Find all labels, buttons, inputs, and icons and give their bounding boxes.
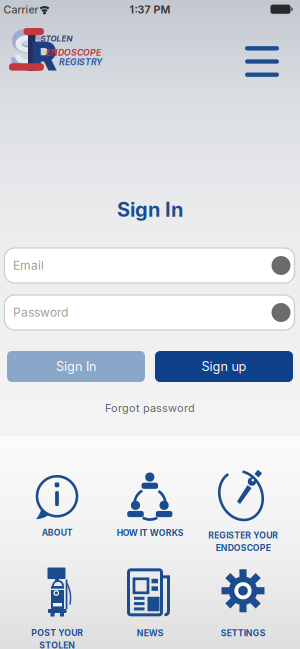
staticText: REGISTRY [59, 57, 102, 67]
staticText: S [13, 26, 39, 74]
button[interactable]: NEWS [104, 568, 196, 638]
staticText: Sign up [201, 359, 246, 374]
button[interactable]: Password [4, 295, 294, 330]
button[interactable]: Sign In [7, 351, 145, 382]
staticText: Forgot password [105, 401, 195, 415]
staticText: SETTINGS [220, 628, 265, 638]
staticText: Carrier [3, 3, 38, 16]
staticText: Password [13, 305, 68, 320]
button[interactable]: POST YOUR STOLEN [11, 556, 103, 649]
staticText: 1:37 PM [129, 3, 170, 16]
staticText: ENDOSCOPE [46, 47, 101, 58]
button[interactable]: Email [4, 248, 294, 283]
staticText: R [31, 33, 57, 80]
staticText: Sign In [56, 359, 96, 374]
staticText: S [8, 17, 44, 83]
button[interactable]: REGISTER YOUR ENDOSCOPE [197, 459, 289, 553]
button[interactable]: SETTINGS [197, 568, 289, 638]
staticText: STOLEN [40, 34, 72, 43]
staticText: POST YOUR STOLEN [31, 627, 83, 649]
staticText: Sign In [117, 197, 183, 222]
staticText: NEWS [136, 628, 163, 638]
staticText: HOW IT WORKS [116, 528, 183, 538]
button[interactable]: ABOUT [11, 472, 103, 538]
staticText: Email [13, 258, 44, 273]
button[interactable]: Sign up [155, 351, 293, 382]
button[interactable]: HOW IT WORKS [104, 471, 196, 538]
staticText: ABOUT [41, 527, 72, 538]
staticText: REGISTER YOUR ENDOSCOPE [208, 530, 278, 553]
button[interactable]: Menu [240, 40, 284, 82]
button[interactable]: Forgot password [105, 401, 195, 415]
